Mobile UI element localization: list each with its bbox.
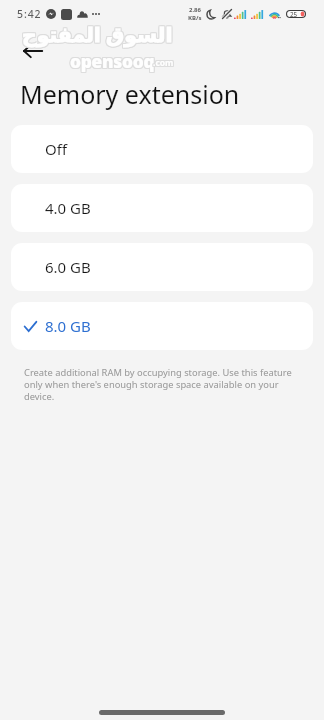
staticText: السوق المفتوح [21, 21, 172, 49]
staticText: Off [45, 139, 68, 159]
staticText: 5:42 [17, 7, 42, 21]
staticText: 4.0 GB [45, 198, 91, 218]
staticText: السوق المفتوح [22, 19, 173, 47]
button[interactable]: 4.0 GB [11, 184, 313, 232]
staticText: .com [153, 56, 174, 68]
staticText: Memory extension [20, 77, 240, 111]
staticText: opensooq [70, 50, 155, 73]
staticText: .com [154, 57, 175, 69]
staticText: السوق المفتوح [23, 20, 174, 48]
staticText: السوق المفتوح [21, 19, 172, 47]
staticText: Create additional RAM by occupying stora… [24, 366, 308, 403]
staticText: .com [153, 58, 174, 70]
staticText: .com [152, 57, 173, 69]
staticText: opensooq [71, 49, 156, 72]
staticText: السوق المفتوح [21, 20, 172, 48]
staticText: .com [153, 57, 174, 69]
staticText: 2.86 [189, 6, 201, 14]
staticText: opensooq [71, 50, 156, 73]
staticText: .com [154, 58, 175, 70]
button[interactable]: Off [11, 125, 313, 173]
staticText: السوق المفتوح [22, 20, 173, 48]
staticText: السوق المفتوح [23, 21, 174, 49]
button[interactable]: Back [16, 34, 50, 68]
staticText: 6.0 GB [45, 257, 91, 277]
button[interactable]: 8.0 GB [11, 302, 313, 350]
staticText: opensooq [70, 49, 155, 72]
staticText: السوق المفتوح [23, 19, 174, 47]
staticText: .com [152, 56, 173, 68]
staticText: opensooq [71, 51, 156, 74]
staticText: KB/s [188, 14, 202, 22]
staticText: opensooq [69, 51, 154, 74]
staticText: .com [154, 56, 175, 68]
staticText: opensooq [70, 51, 155, 74]
staticText: السوق المفتوح [22, 21, 173, 49]
staticText: opensooq [69, 49, 154, 72]
staticText: 8.0 GB [45, 316, 91, 336]
staticText: .com [152, 58, 173, 70]
staticText: 25 [290, 10, 298, 18]
staticText: opensooq [69, 50, 154, 73]
button[interactable]: 6.0 GB [11, 243, 313, 291]
